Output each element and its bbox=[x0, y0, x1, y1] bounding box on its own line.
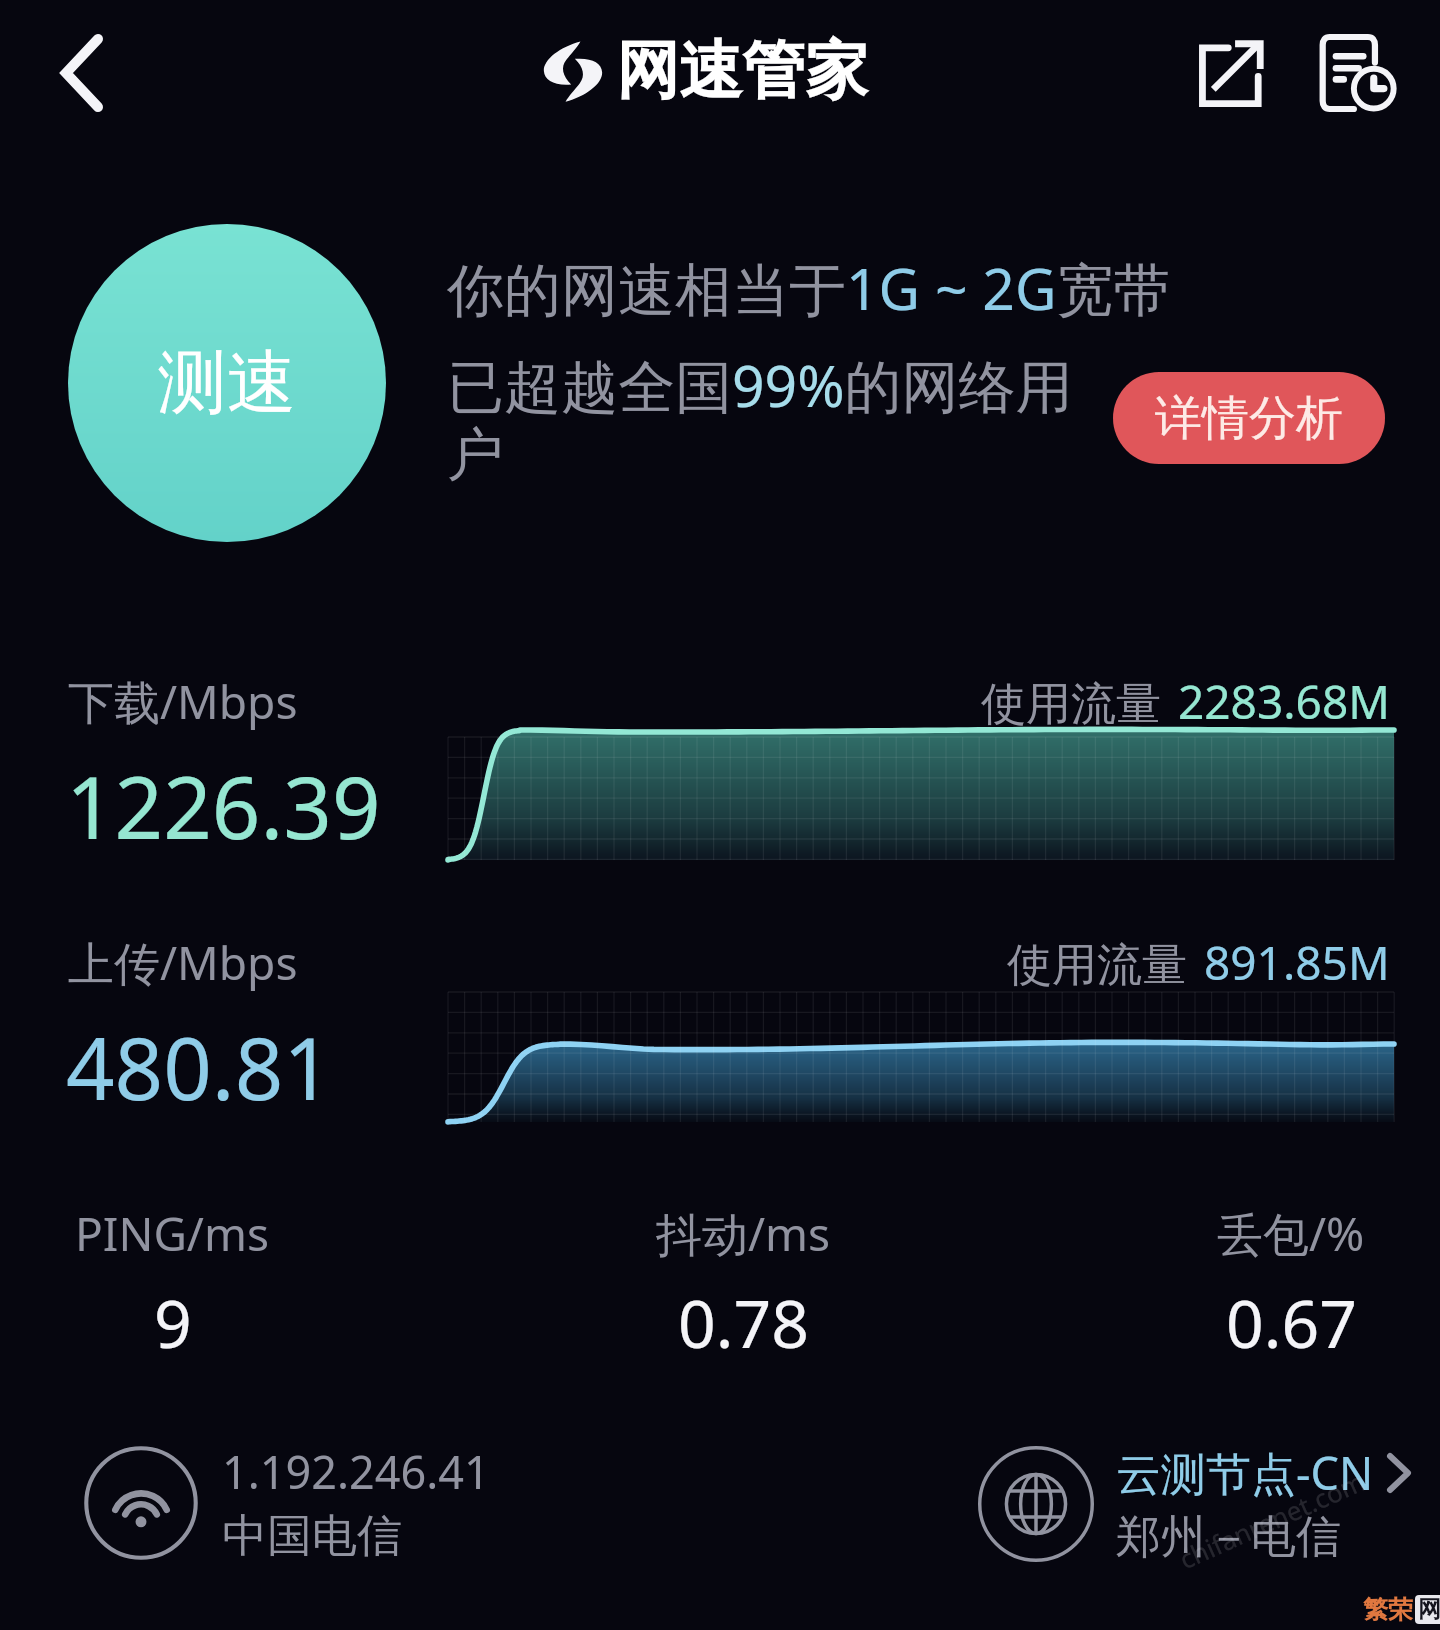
staticText: 网速管家 bbox=[616, 31, 868, 110]
staticText: 9 bbox=[154, 1277, 192, 1367]
staticText: 抖动/ms bbox=[656, 1202, 831, 1265]
staticText: 使用流量 bbox=[981, 676, 1161, 733]
button[interactable]: Back bbox=[24, 15, 140, 131]
button[interactable]: History bbox=[1305, 16, 1409, 130]
staticText: 丢包/% bbox=[1217, 1202, 1365, 1265]
staticText: 1226.39 bbox=[66, 748, 381, 864]
staticText: 0.67 bbox=[1226, 1277, 1357, 1367]
staticText: 上传/Mbps bbox=[68, 931, 298, 994]
button[interactable]: 1.192.246.41 bbox=[84, 1441, 490, 1565]
staticText: PING/ms bbox=[75, 1202, 270, 1265]
staticText: chifanrenet.com bbox=[1173, 1463, 1370, 1576]
staticText: 1.192.246.41 bbox=[222, 1441, 490, 1502]
button[interactable]: Share bbox=[1179, 18, 1283, 128]
staticText: 郑州－电信 bbox=[1116, 1509, 1341, 1566]
staticText: 0.78 bbox=[678, 1277, 809, 1367]
staticText: 891.85M bbox=[1204, 931, 1390, 994]
staticText: 480.81 bbox=[66, 1009, 332, 1125]
button[interactable]: 测速 bbox=[68, 224, 386, 542]
staticText: 测速 bbox=[158, 340, 296, 427]
staticText: 使用流量 bbox=[1007, 937, 1187, 994]
staticText: 网 bbox=[1418, 1595, 1440, 1624]
staticText: 你的网速相当于1G ~ 2G宽带 bbox=[447, 249, 1171, 327]
staticText: 2283.68M bbox=[1178, 670, 1390, 733]
button[interactable]: 详情分析 bbox=[1113, 372, 1385, 464]
button[interactable]: 云测节点-CN bbox=[978, 1442, 1411, 1566]
staticText: 已超越全国99%的网络用户 bbox=[447, 346, 1079, 491]
staticText: 云测节点-CN bbox=[1116, 1442, 1374, 1503]
staticText: 详情分析 bbox=[1155, 389, 1343, 448]
staticText: 下载/Mbps bbox=[68, 670, 298, 733]
staticText: 繁荣 bbox=[1363, 1594, 1413, 1625]
staticText: 中国电信 bbox=[222, 1508, 402, 1565]
